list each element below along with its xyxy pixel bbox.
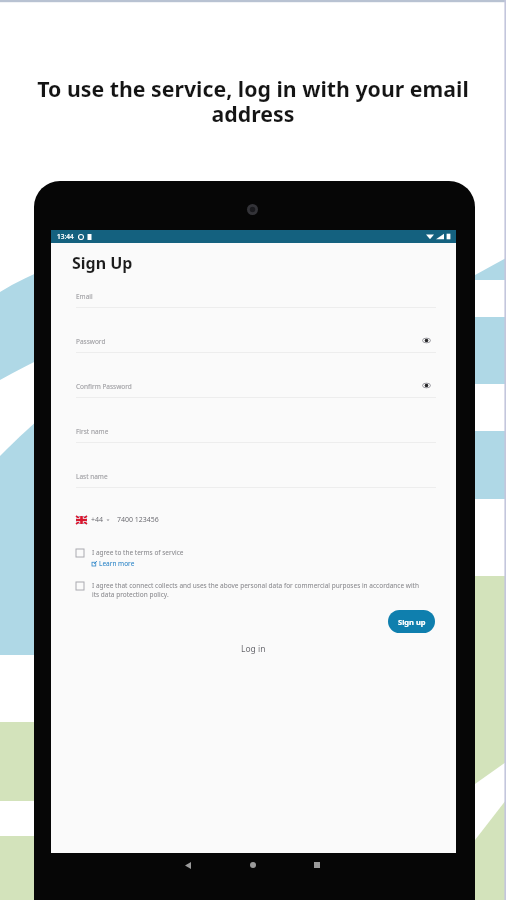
staticText: I agree to the terms of service [92,548,184,557]
staticText: Learn more [99,559,135,568]
staticText: Email [76,292,93,301]
staticText: Password [76,337,106,346]
button[interactable]: Log in [237,639,270,659]
button[interactable]: Home [244,856,262,874]
staticText: To use the service, log in with your ema… [20,74,486,128]
staticText: 7400 123456 [117,515,159,525]
staticText: Last name [76,472,108,481]
button[interactable]: Back [179,856,197,874]
staticText: I agree that connect collects and uses t… [92,581,425,599]
button[interactable]: I agree that connect collects and uses t… [76,581,425,599]
staticText: First name [76,427,109,436]
staticText: +44 [91,515,104,525]
staticText: Sign up [398,617,426,627]
staticText: Confirm Password [76,382,132,391]
button[interactable]: I agree to the terms of service [76,548,436,568]
button[interactable]: Sign up [388,610,435,633]
button[interactable]: Recent apps [308,856,326,874]
staticText: Sign Up [72,252,133,274]
staticText: 13:44 [57,232,74,241]
